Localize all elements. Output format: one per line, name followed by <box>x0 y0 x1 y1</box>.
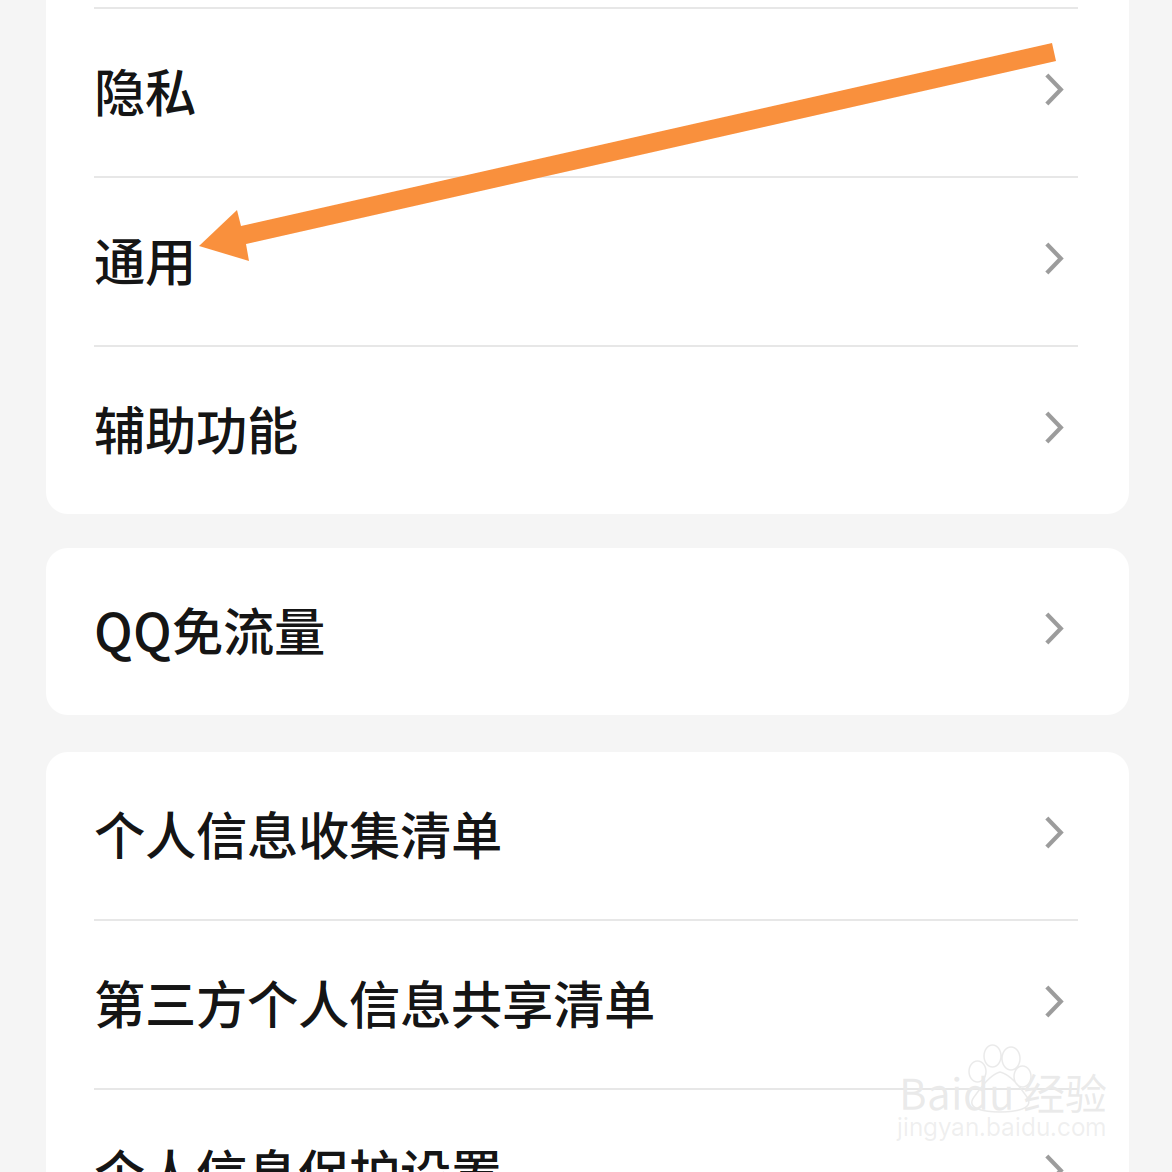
staticText: 辅助功能 <box>94 390 298 465</box>
staticText: 隐私 <box>94 52 196 127</box>
button[interactable]: 个人信息收集清单 <box>46 752 1129 919</box>
staticText: 第三方个人信息共享清单 <box>94 964 655 1039</box>
staticText: QQ免流量 <box>94 591 325 666</box>
button[interactable]: 辅助功能 <box>46 347 1129 514</box>
staticText: jingyan.baidu.com <box>897 1112 1106 1142</box>
button[interactable]: QQ免流量 <box>46 548 1129 715</box>
staticText: Baidu 经验 <box>899 1061 1107 1122</box>
button[interactable]: 第三方个人信息共享清单 <box>46 921 1129 1088</box>
button[interactable]: 通用 <box>46 178 1129 345</box>
button[interactable]: 个人信息保护设置 <box>46 1090 1129 1172</box>
staticText: 个人信息收集清单 <box>94 795 502 870</box>
staticText: 个人信息保护设置 <box>94 1133 502 1172</box>
staticText: 通用 <box>94 221 196 296</box>
button[interactable]: 隐私 <box>46 9 1129 176</box>
